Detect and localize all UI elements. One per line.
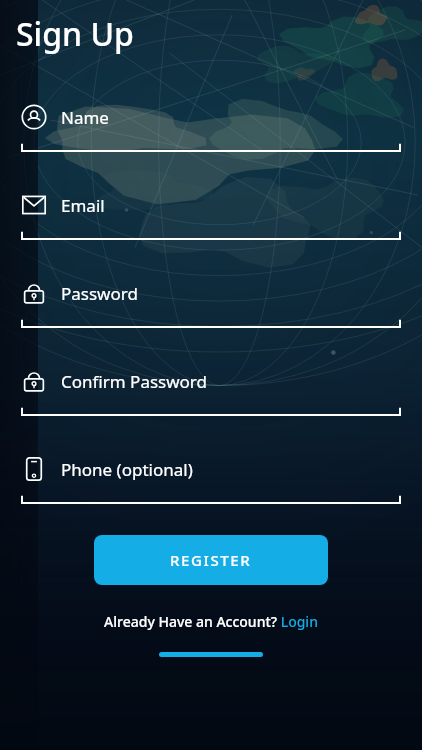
button[interactable]: Email bbox=[21, 192, 401, 240]
staticText: Name bbox=[61, 106, 109, 129]
staticText: Password bbox=[61, 282, 138, 305]
other: Name bbox=[21, 104, 47, 130]
button[interactable]: Name bbox=[21, 104, 401, 152]
staticText: Phone (optional) bbox=[61, 458, 193, 481]
staticText: Already Have an Account? Login bbox=[104, 612, 318, 631]
staticText: Confirm Password bbox=[61, 370, 207, 393]
button[interactable]: Already Have an Account? Login bbox=[0, 612, 422, 631]
button[interactable]: Confirm Password bbox=[21, 368, 401, 416]
staticText: Sign Up bbox=[16, 12, 134, 56]
button[interactable]: Password bbox=[21, 280, 401, 328]
other: Email bbox=[21, 192, 47, 218]
button[interactable]: Phone bbox=[21, 456, 401, 504]
other: Confirm Password bbox=[21, 368, 47, 394]
staticText: REGISTER bbox=[170, 550, 252, 570]
other: Phone bbox=[21, 456, 47, 482]
button[interactable]: REGISTER bbox=[94, 535, 328, 585]
other: Password bbox=[21, 280, 47, 306]
staticText: Email bbox=[61, 194, 105, 217]
